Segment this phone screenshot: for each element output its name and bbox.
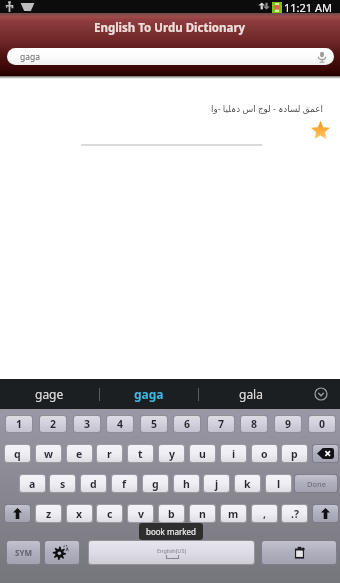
staticText: .? [291,507,299,521]
button[interactable]: gala [199,379,302,409]
staticText: 6 [184,417,191,431]
button[interactable]: y [159,445,184,462]
button[interactable]: e [67,445,92,462]
other: Backspace [317,448,334,459]
staticText: c [107,507,113,521]
staticText: 5 [151,417,158,431]
button[interactable]: q [5,445,30,462]
staticText: 4 [117,417,124,431]
button[interactable]: i [221,445,246,462]
staticText: f [122,477,127,491]
button[interactable]: 9 [275,416,301,432]
button[interactable]: Shift [5,505,30,522]
staticText: , [263,507,266,521]
staticText: w [44,447,53,461]
button[interactable]: gage [0,379,99,409]
button[interactable]: g [143,475,168,492]
button[interactable]: Backspace [313,445,338,462]
staticText: a [29,477,36,491]
button[interactable]: English(US) [89,541,254,564]
button[interactable]: 4 [107,416,133,432]
staticText: b [168,507,175,521]
button[interactable]: a [20,475,45,492]
staticText: gaga [134,386,164,402]
staticText: اعمق لسادہ - لوج اس دہلیا -وا [211,103,323,115]
staticText: q [14,447,21,461]
button[interactable]: gaga [100,379,198,409]
button[interactable]: Settings [45,541,79,564]
button[interactable]: h [174,475,199,492]
button[interactable]: u [190,445,215,462]
button[interactable]: c [97,505,122,522]
other: Shift [13,508,22,519]
button[interactable]: k [235,475,260,492]
button[interactable]: 3 [74,416,100,432]
button[interactable]: l [266,475,291,492]
staticText: h [183,477,190,491]
staticText: i [232,447,236,461]
button[interactable]: n [190,505,215,522]
button[interactable]: p [282,445,307,462]
staticText: g [152,477,159,491]
button[interactable]: , [252,505,277,522]
button[interactable]: x [67,505,92,522]
staticText: English(US) [157,547,187,554]
staticText: SYM [15,547,32,558]
button[interactable]: 8 [241,416,267,432]
button[interactable]: v [128,505,153,522]
staticText: x [76,507,83,521]
button[interactable]: 1 [6,416,32,432]
staticText: s [60,477,66,491]
staticText: English To Urdu Dictionary [94,20,246,36]
button[interactable]: s [50,475,75,492]
staticText: t [138,447,143,461]
button[interactable]: 2 [40,416,66,432]
staticText: k [244,477,251,491]
staticText: 8 [251,417,258,431]
staticText: 7 [218,417,225,431]
button[interactable]: z [36,505,61,522]
staticText: m [228,507,239,521]
staticText: 3 [84,417,91,431]
staticText: 11:21 AM [284,0,332,13]
staticText: gaga [20,51,40,63]
button[interactable]: Done [295,475,337,492]
button[interactable]: j [204,475,229,492]
staticText: book marked [146,526,196,537]
staticText: v [138,507,144,521]
button[interactable]: Clipboard [262,541,336,564]
button[interactable]: w [36,445,61,462]
other: Shift [321,508,330,519]
staticText: gala [239,386,263,402]
button[interactable]: 7 [208,416,234,432]
button[interactable]: d [81,475,106,492]
button[interactable]: t [128,445,153,462]
button[interactable]: 5 [141,416,167,432]
button[interactable]: 0 [309,416,335,432]
staticText: e [76,447,83,461]
button[interactable]: b [159,505,184,522]
button[interactable]: .? [282,505,307,522]
staticText: d [90,477,97,491]
staticText: Done [307,479,326,489]
staticText: 9 [285,417,292,431]
staticText: z [46,507,52,521]
staticText: 2 [50,417,57,431]
button[interactable]: More suggestions [302,379,340,409]
button[interactable]: f [112,475,137,492]
button[interactable]: Bookmark [310,120,331,141]
button[interactable]: SYM [7,541,40,564]
button[interactable]: Shift [313,505,338,522]
staticText: j [215,477,219,491]
button[interactable]: gaga [7,48,334,65]
staticText: n [199,507,206,521]
staticText: gage [35,386,64,402]
button[interactable]: m [221,505,246,522]
staticText: 0 [319,417,326,431]
staticText: p [291,447,298,461]
button[interactable]: r [97,445,122,462]
other: Voice search [317,48,327,65]
staticText: o [261,447,268,461]
button[interactable]: o [252,445,277,462]
button[interactable]: 6 [174,416,200,432]
